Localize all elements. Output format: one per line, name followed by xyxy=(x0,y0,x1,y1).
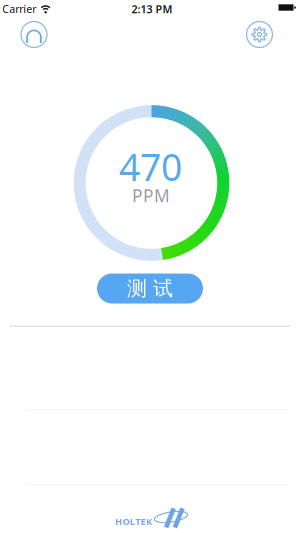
staticText: HOLTEK xyxy=(115,515,152,528)
button[interactable] xyxy=(0,0,300,60)
staticText: 470 xyxy=(119,142,182,191)
staticText: PPM xyxy=(132,184,170,207)
button[interactable] xyxy=(0,0,300,60)
staticText: Carrier xyxy=(2,2,36,16)
staticText: 2:13 PM xyxy=(131,2,172,16)
button[interactable]: 测 试 xyxy=(97,273,203,303)
staticText: 测 试 xyxy=(127,276,173,301)
